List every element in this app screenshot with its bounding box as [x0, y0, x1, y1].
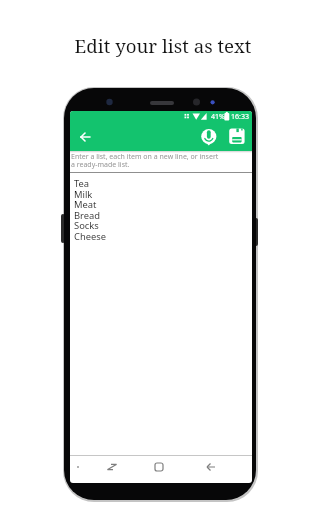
staticText: Enter a list, each item on a new line, o… [71, 152, 219, 169]
staticText: Tea [74, 177, 90, 190]
button[interactable] [199, 455, 223, 479]
button[interactable] [224, 125, 250, 149]
staticText: Bread [74, 209, 101, 222]
button[interactable] [147, 455, 171, 479]
staticText: 16:33 [231, 112, 249, 122]
button[interactable] [100, 455, 124, 479]
staticText: Meat [74, 198, 97, 211]
staticText: Socks [74, 219, 99, 232]
staticText: 41% [211, 112, 225, 122]
button[interactable] [197, 125, 221, 149]
staticText: Edit your list as text [0, 33, 326, 58]
button[interactable]: Tea [70, 173, 252, 455]
button[interactable] [73, 125, 98, 149]
staticText: Cheese [74, 230, 107, 243]
staticText: Milk [74, 188, 93, 201]
